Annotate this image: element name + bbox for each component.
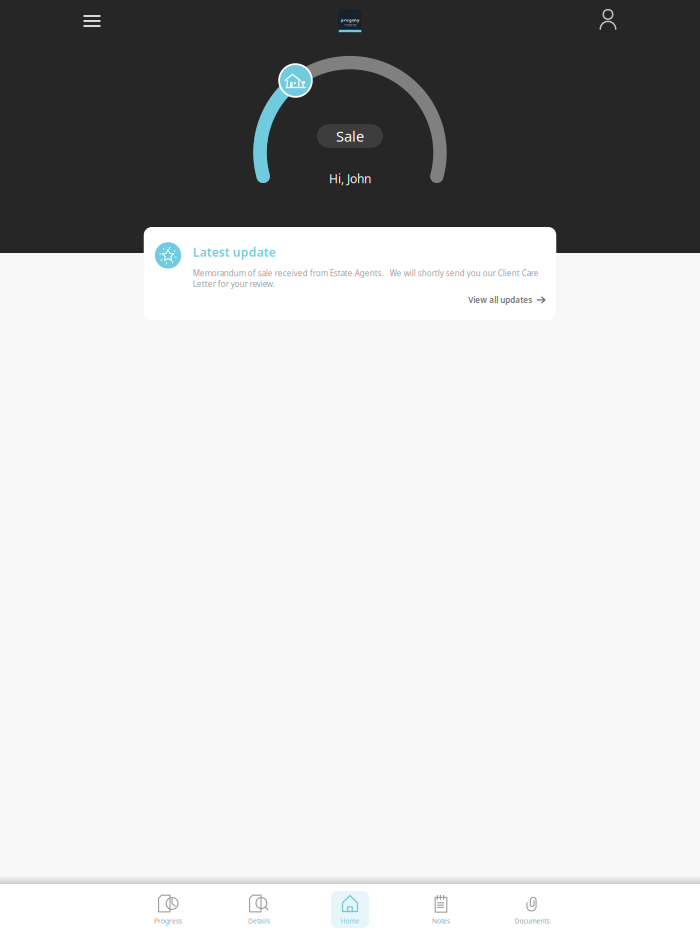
staticText: View all updates	[468, 295, 532, 305]
button[interactable]: Notes	[395, 884, 486, 934]
staticText: Documents	[514, 917, 549, 925]
button[interactable]: Progress	[122, 884, 213, 934]
staticText: progeny	[341, 17, 359, 23]
staticText: Property	[344, 23, 356, 27]
staticText: Notes	[432, 917, 450, 925]
staticText: Memorandum of sale received from Estate …	[193, 268, 539, 289]
button[interactable]: Details	[213, 884, 304, 934]
staticText: Progress	[154, 917, 182, 925]
button[interactable]: Account	[588, 0, 627, 41]
button[interactable]: Home	[304, 884, 395, 934]
button[interactable]: View all updates	[464, 291, 549, 309]
staticText: Hi, John	[329, 170, 371, 186]
staticText: Sale	[336, 126, 364, 146]
staticText: Home	[340, 917, 359, 925]
button[interactable]: Documents	[486, 884, 577, 934]
button[interactable]: Menu	[72, 4, 111, 38]
button[interactable]: Progeny Property home	[332, 3, 368, 39]
staticText: Latest update	[193, 244, 276, 260]
staticText: Details	[248, 917, 270, 925]
